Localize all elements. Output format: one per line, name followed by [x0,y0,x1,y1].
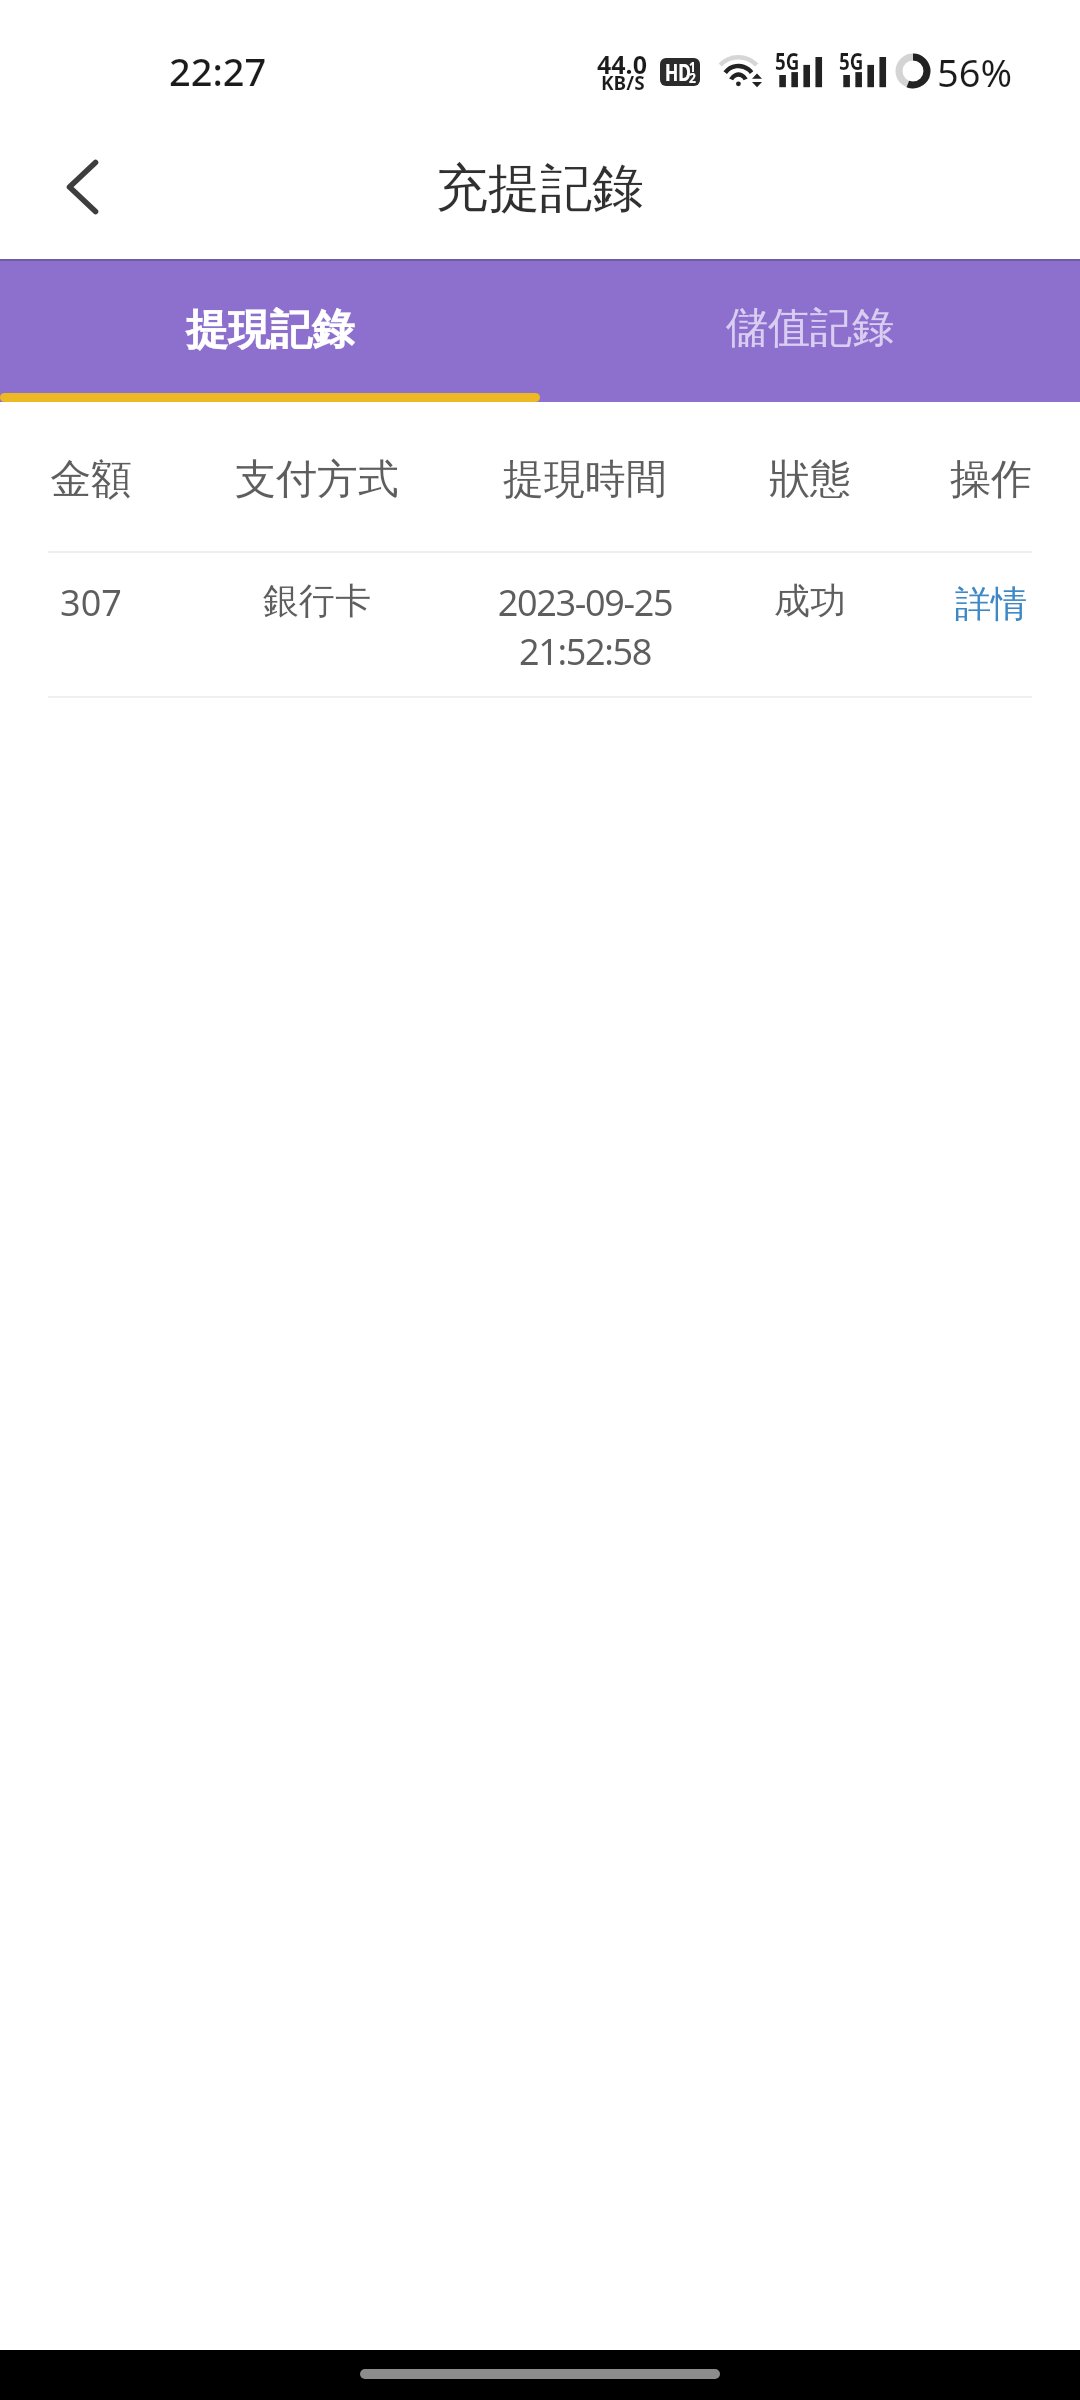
staticText: 成功 [774,578,846,623]
staticText: 操作 [950,454,1032,506]
staticText: 5G [775,45,800,76]
staticText: 狀態 [769,454,851,506]
staticText: 金額 [50,454,132,506]
button[interactable]: 詳情 [935,561,1047,646]
button[interactable]: 儲值記錄 [540,259,1080,402]
other: Home [360,2369,720,2379]
staticText: 56% [937,46,1013,98]
staticText: 支付方式 [235,454,399,506]
staticText: 5G [839,45,864,76]
staticText: 2 [689,67,696,86]
staticText: 銀行卡 [263,578,371,623]
staticText: 22:27 [169,45,267,97]
staticText: 充提記錄 [436,156,644,222]
button[interactable]: Back [0,120,138,259]
staticText: 1 [689,58,696,76]
staticText: 2023-09-25 21:52:58 [452,578,718,676]
staticText: 儲值記錄 [726,302,894,355]
staticText: HD [665,58,691,83]
staticText: 307 [60,578,122,627]
staticText: 詳情 [955,581,1027,626]
button[interactable]: 提現記錄 [0,259,540,402]
staticText: 提現記錄 [186,304,354,357]
staticText: 提現時間 [503,454,667,506]
staticText: KB/S [601,70,645,96]
staticText: 44.0 [597,47,647,81]
